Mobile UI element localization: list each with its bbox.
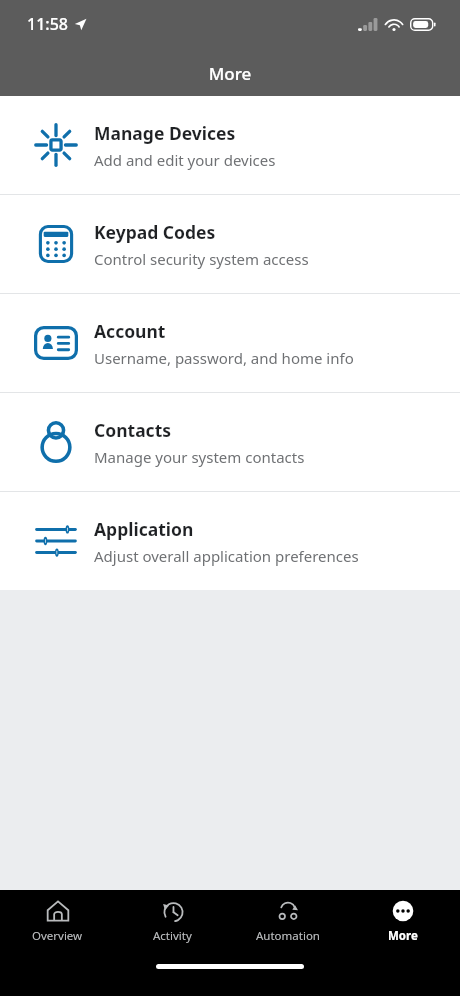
button[interactable]: Application xyxy=(0,492,460,590)
staticText: Manage your system contacts xyxy=(94,447,305,467)
staticText: Application xyxy=(94,517,194,541)
button[interactable]: Keypad Codes xyxy=(0,195,460,293)
staticText: Add and edit your devices xyxy=(94,150,276,170)
staticText: Username, password, and home info xyxy=(94,348,354,368)
staticText: 11:58 xyxy=(27,13,68,35)
staticText: Account xyxy=(94,319,166,343)
button[interactable]: Automation xyxy=(230,890,345,952)
staticText: More xyxy=(388,928,418,944)
button[interactable]: Activity xyxy=(115,890,230,952)
button[interactable]: Manage Devices xyxy=(0,96,460,194)
staticText: Manage Devices xyxy=(94,121,236,145)
staticText: Adjust overall application preferences xyxy=(94,546,359,566)
staticText: Control security system access xyxy=(94,249,309,269)
staticText: Overview xyxy=(32,928,83,944)
staticText: Keypad Codes xyxy=(94,220,216,244)
button[interactable]: More xyxy=(345,890,460,952)
staticText: Contacts xyxy=(94,418,172,442)
staticText: Activity xyxy=(153,928,192,944)
button[interactable]: Account xyxy=(0,294,460,392)
button[interactable]: Contacts xyxy=(0,393,460,491)
staticText: More xyxy=(0,62,460,85)
staticText: Automation xyxy=(256,928,320,944)
button[interactable]: Overview xyxy=(0,890,115,952)
